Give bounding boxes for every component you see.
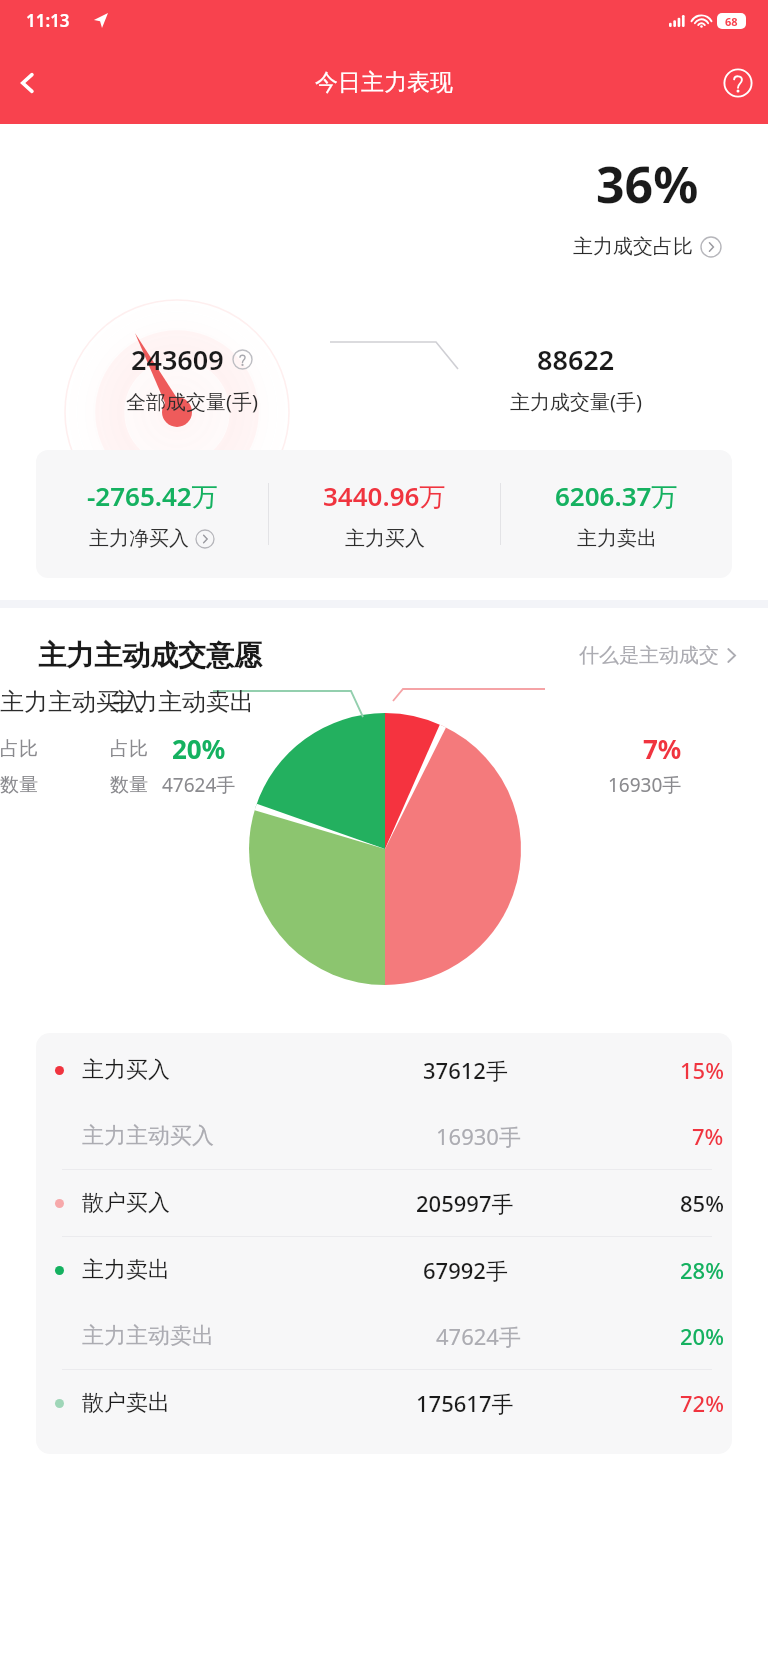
staticText: 主力主动卖出 (82, 1322, 214, 1350)
staticText: 主力主动卖出 (110, 687, 254, 717)
staticText: 68 (725, 14, 738, 29)
staticText: 88622 (537, 341, 615, 378)
staticText: 20% (680, 1321, 724, 1351)
staticText: 85% (680, 1188, 724, 1218)
staticText: 数量 (0, 773, 38, 797)
staticText: 占比 (0, 737, 38, 761)
staticText: 36% (596, 150, 699, 218)
staticText: 主力成交占比 (573, 234, 693, 259)
staticText: 28% (680, 1255, 724, 1285)
staticText: 主力成交量(手) (510, 388, 642, 415)
button[interactable]: 散户买入 (36, 1170, 732, 1236)
staticText: 37612手 (423, 1055, 508, 1085)
staticText: 散户卖出 (82, 1389, 170, 1417)
staticText: 主力主动买入 (82, 1122, 214, 1150)
staticText: -2765.42万 (87, 478, 218, 514)
staticText: 散户买入 (82, 1189, 170, 1217)
button[interactable]: Back (0, 55, 56, 111)
staticText: 主力卖出 (82, 1256, 170, 1284)
button[interactable]: 主力买入 (36, 1037, 732, 1103)
button[interactable]: 主力主动卖出 (36, 1303, 732, 1369)
staticText: 什么是主动成交 (579, 643, 719, 668)
staticText: 主力主动买入 (0, 687, 144, 717)
staticText: 175617手 (416, 1388, 514, 1418)
staticText: 7% (692, 1121, 724, 1151)
staticText: 数量 (110, 773, 148, 797)
staticText: 205997手 (416, 1188, 514, 1218)
staticText: 67992手 (423, 1255, 508, 1285)
staticText: 主力净买入 (89, 526, 189, 551)
staticText: 15% (680, 1055, 724, 1085)
staticText: 今日主力表现 (315, 68, 453, 97)
staticText: 47624手 (436, 1321, 521, 1351)
staticText: 20% (172, 731, 226, 766)
staticText: 全部成交量(手) (126, 388, 258, 415)
staticText: 16930手 (608, 772, 682, 798)
staticText: 47624手 (162, 772, 236, 798)
staticText: 主力买入 (345, 526, 425, 551)
staticText: 72% (680, 1388, 724, 1418)
button[interactable]: Help (708, 53, 768, 113)
staticText: 16930手 (436, 1121, 521, 1151)
button[interactable]: 主力卖出 (36, 1237, 732, 1303)
staticText: 7% (643, 731, 682, 766)
button[interactable]: 主力主动买入 (36, 1103, 732, 1169)
staticText: 主力买入 (82, 1056, 170, 1084)
staticText: 3440.96万 (323, 478, 446, 514)
staticText: 主力主动成交意愿 (38, 638, 262, 673)
staticText: 主力卖出 (577, 526, 657, 551)
button[interactable]: -2765.42万 (36, 478, 268, 551)
staticText: 243609 (131, 341, 224, 378)
button[interactable]: 什么是主动成交 (579, 643, 738, 668)
button[interactable]: 主力成交占比 (573, 234, 722, 259)
staticText: 占比 (110, 737, 148, 761)
staticText: 6206.37万 (555, 478, 678, 514)
staticText: 11:13 (26, 9, 70, 32)
button[interactable]: 说明 (232, 349, 253, 370)
button[interactable]: 散户卖出 (36, 1370, 732, 1436)
